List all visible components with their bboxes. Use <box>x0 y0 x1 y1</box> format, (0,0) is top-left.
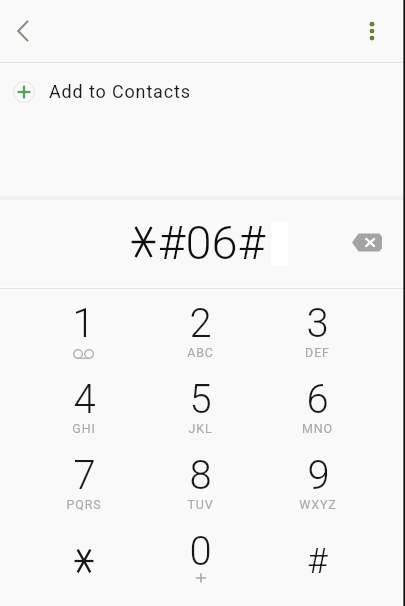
button[interactable]: 6 <box>259 366 376 442</box>
staticText: Add to Contacts <box>49 81 191 102</box>
button[interactable]: 3 <box>259 290 376 366</box>
staticText: PQRS <box>66 497 102 512</box>
button[interactable]: Back <box>0 7 47 55</box>
staticText: #06# <box>158 215 266 270</box>
button[interactable]: 8 <box>142 442 259 518</box>
button[interactable]: Add to Contacts <box>0 68 405 115</box>
staticText: 8 <box>189 452 212 499</box>
button[interactable]: 5 <box>142 366 259 442</box>
button[interactable]: Backspace <box>340 215 394 269</box>
staticText: TUV <box>187 497 214 512</box>
staticText: MNO <box>302 421 333 436</box>
staticText: ABC <box>187 345 214 360</box>
staticText: DEF <box>305 345 330 360</box>
button[interactable]: More options <box>350 9 394 53</box>
staticText: 3 <box>306 300 329 347</box>
staticText: 2 <box>189 300 212 347</box>
staticText: 4 <box>73 376 96 423</box>
button[interactable]: 0 <box>142 518 259 598</box>
staticText: 7 <box>73 452 96 499</box>
staticText: 1 <box>72 300 95 347</box>
staticText: JKL <box>188 421 213 436</box>
staticText: 6 <box>306 376 329 423</box>
button[interactable]: 7 <box>25 442 142 518</box>
button[interactable]: Star <box>25 518 142 598</box>
staticText: 5 <box>189 376 212 423</box>
button[interactable]: 4 <box>25 366 142 442</box>
button[interactable]: 9 <box>259 442 376 518</box>
staticText: GHI <box>72 421 96 436</box>
button[interactable]: 2 <box>142 290 259 366</box>
staticText: WXYZ <box>299 497 337 512</box>
staticText: 0 <box>189 528 212 575</box>
staticText: 9 <box>307 452 330 499</box>
button[interactable]: 1 <box>25 290 142 366</box>
button[interactable]: # <box>259 518 376 598</box>
staticText: # <box>307 541 328 582</box>
